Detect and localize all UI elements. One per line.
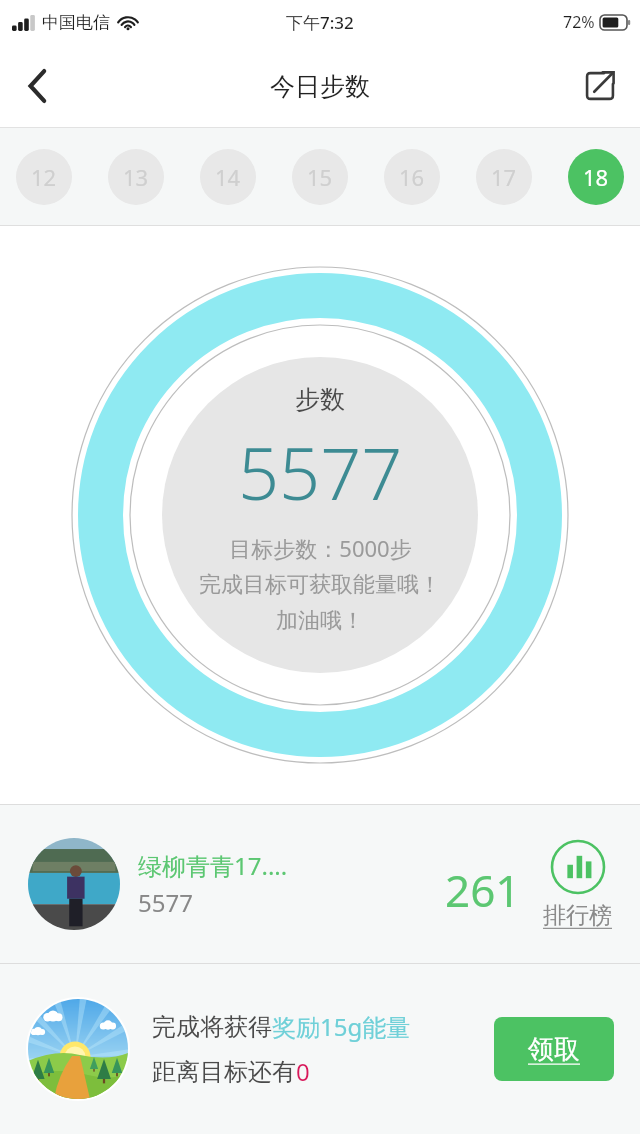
staticText: 12 (31, 162, 57, 192)
button[interactable]: Back (10, 58, 66, 114)
button[interactable]: Share (572, 58, 628, 114)
staticText: 16 (399, 162, 425, 192)
staticText: 完成将获得 (152, 1012, 272, 1042)
button[interactable]: 17 (476, 149, 532, 205)
button[interactable]: 排行榜 (543, 839, 612, 930)
button[interactable]: 14 (200, 149, 256, 205)
staticText: 18 (583, 162, 609, 192)
staticText: 261 (445, 860, 521, 920)
staticText: 绿柳青青17.... (138, 849, 288, 882)
staticText: 距离目标还有 (152, 1057, 296, 1087)
button[interactable]: 16 (384, 149, 440, 205)
staticText: 领取 (528, 1033, 580, 1066)
staticText: 72% (563, 11, 595, 33)
staticText: 5577 (238, 423, 403, 521)
staticText: 排行榜 (543, 901, 612, 930)
staticText: 15 (307, 162, 333, 192)
staticText: 14 (215, 162, 241, 192)
staticText: 今日步数 (270, 71, 370, 102)
staticText: 中国电信 (42, 12, 110, 33)
button[interactable]: 绿柳青青17.... (0, 805, 640, 963)
staticText: 下午7:32 (286, 11, 354, 34)
staticText: 奖励15g能量 (272, 1010, 411, 1043)
button[interactable]: 18 (568, 149, 624, 205)
button[interactable]: 领取 (494, 1017, 614, 1081)
staticText: 加油哦！ (276, 607, 364, 635)
staticText: 完成目标可获取能量哦！ (199, 571, 441, 599)
staticText: 步数 (295, 384, 345, 415)
staticText: 13 (123, 162, 149, 192)
staticText: 0 (296, 1055, 310, 1088)
staticText: 目标步数：5000步 (229, 533, 412, 563)
staticText: 5577 (138, 886, 193, 919)
staticText: 17 (491, 162, 517, 192)
button[interactable]: 13 (108, 149, 164, 205)
button[interactable]: 15 (292, 149, 348, 205)
button[interactable]: 12 (16, 149, 72, 205)
